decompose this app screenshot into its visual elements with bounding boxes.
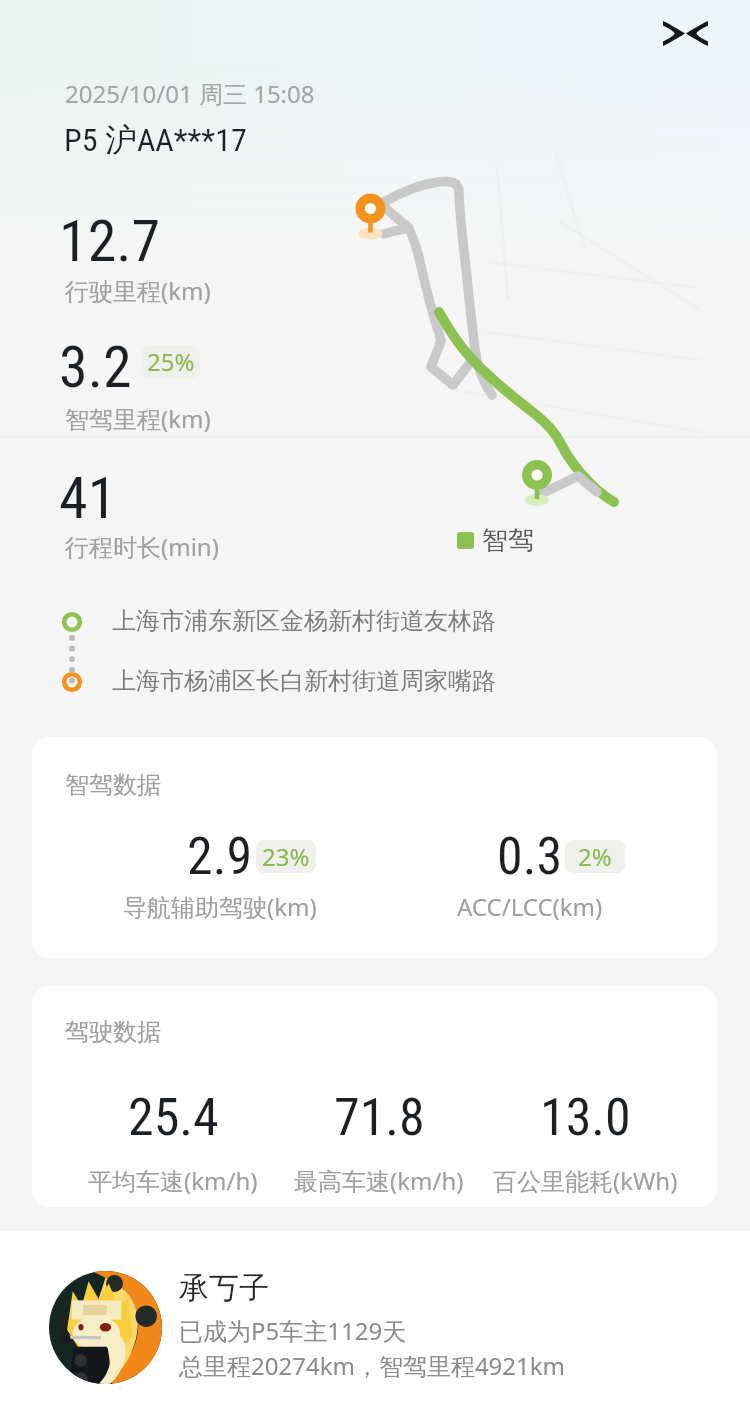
staticText: 41 (59, 464, 117, 532)
staticText: 承丂子 (179, 1269, 269, 1307)
staticText: 23% (262, 840, 310, 873)
staticText: 25.4 (128, 1087, 219, 1148)
staticText: 总里程20274km，智驾里程4921km (179, 1349, 566, 1382)
staticText: 13.0 (540, 1087, 631, 1148)
staticText: 25% (147, 345, 195, 378)
staticText: 已成为P5车主1129天 (179, 1314, 407, 1347)
staticText: 行驶里程(km) (65, 274, 211, 307)
staticText: 智驾里程(km) (65, 402, 211, 435)
staticText: 12.7 (59, 207, 161, 275)
staticText: ACC/LCC(km) (457, 890, 603, 923)
staticText: 上海市浦东新区金杨新村街道友林路 (112, 606, 496, 636)
staticText: 行程时长(min) (65, 530, 219, 563)
staticText: 0.3 (497, 826, 563, 887)
button[interactable]: 承丂子 (0, 1231, 750, 1422)
staticText: 智驾 (482, 524, 534, 557)
button[interactable] (32, 986, 717, 1207)
staticText: P5 沪AA***17 (64, 120, 247, 160)
staticText: 3.2 (59, 333, 132, 401)
staticText: 71.8 (334, 1087, 425, 1148)
button[interactable]: 智驾 (457, 524, 534, 557)
staticText: 驾驶数据 (65, 1017, 161, 1047)
staticText: 2% (578, 840, 612, 873)
staticText: 最高车速(km/h) (294, 1164, 464, 1197)
staticText: 上海市杨浦区长白新村街道周家嘴路 (112, 666, 496, 696)
staticText: 导航辅助驾驶(km) (123, 890, 317, 923)
button[interactable] (32, 737, 717, 958)
button[interactable]: XPeng logo (657, 11, 713, 55)
staticText: 平均车速(km/h) (88, 1164, 258, 1197)
staticText: 百公里能耗(kWh) (493, 1164, 678, 1197)
staticText: 智驾数据 (65, 770, 161, 800)
staticText: 2.9 (187, 826, 253, 887)
staticText: 2025/10/01 周三 15:08 (65, 77, 315, 110)
